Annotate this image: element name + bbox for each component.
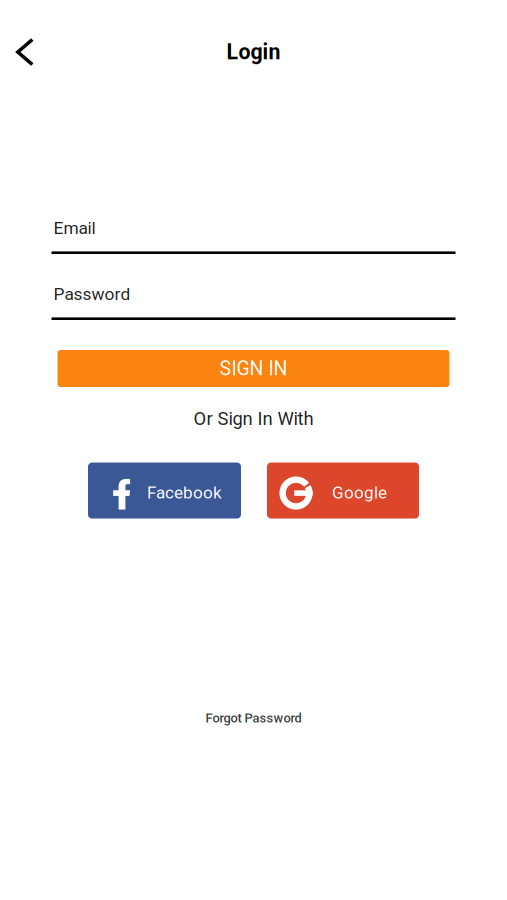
staticText: Forgot Password xyxy=(205,710,301,726)
staticText: Google xyxy=(332,483,387,503)
staticText: Login xyxy=(226,39,280,64)
button[interactable]: Back xyxy=(0,28,50,76)
staticText: SIGN IN xyxy=(219,357,287,380)
button[interactable]: Forgot Password xyxy=(173,706,333,730)
staticText: Or Sign In With xyxy=(193,408,313,430)
staticText: Email xyxy=(53,218,95,238)
staticText: Facebook xyxy=(147,483,222,503)
button[interactable]: SIGN IN xyxy=(57,350,449,387)
button[interactable]: Google xyxy=(267,463,419,519)
button[interactable]: Facebook xyxy=(88,463,241,519)
staticText: Password xyxy=(53,284,130,304)
